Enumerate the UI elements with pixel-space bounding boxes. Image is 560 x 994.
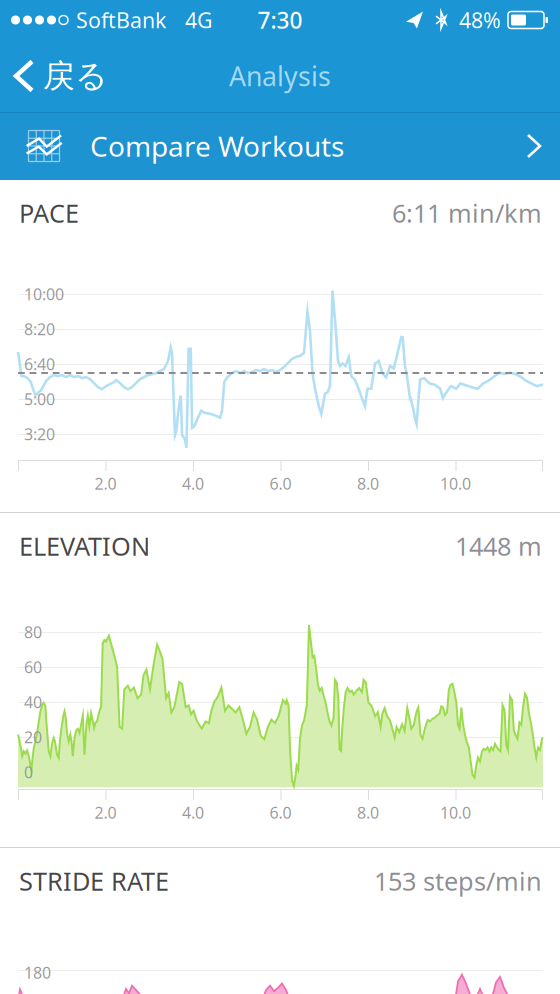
- staticText: 48%: [459, 6, 501, 34]
- staticText: ELEVATION: [19, 529, 150, 563]
- staticText: 8.0: [357, 473, 379, 494]
- staticText: Analysis: [229, 58, 331, 94]
- staticText: 7:30: [257, 5, 302, 35]
- staticText: 4.0: [182, 802, 204, 823]
- staticText: 4.0: [182, 473, 204, 494]
- staticText: 10.0: [440, 802, 471, 823]
- staticText: 10.0: [440, 473, 471, 494]
- staticText: 180: [24, 962, 51, 983]
- staticText: 戻る: [43, 56, 108, 96]
- staticText: 4G: [185, 6, 213, 34]
- staticText: 40: [24, 691, 42, 713]
- button[interactable]: Compare Workouts: [0, 112, 560, 180]
- staticText: 6.0: [269, 473, 291, 494]
- staticText: STRIDE RATE: [19, 864, 169, 898]
- staticText: 0: [24, 761, 33, 783]
- staticText: 5:00: [24, 388, 55, 410]
- staticText: 60: [24, 656, 42, 678]
- staticText: 20: [24, 726, 42, 748]
- staticText: 6.0: [269, 802, 291, 823]
- staticText: 6:11 min/km: [392, 196, 542, 230]
- staticText: 8.0: [357, 802, 379, 823]
- staticText: PACE: [19, 196, 79, 230]
- staticText: Compare Workouts: [90, 127, 344, 165]
- staticText: 6:40: [24, 353, 55, 375]
- staticText: SoftBank: [76, 6, 166, 34]
- staticText: 80: [24, 621, 42, 643]
- staticText: 10:00: [24, 283, 64, 305]
- staticText: 1448 m: [455, 529, 542, 563]
- staticText: 3:20: [24, 423, 55, 445]
- staticText: 8:20: [24, 318, 55, 340]
- staticText: 2.0: [94, 473, 116, 494]
- button[interactable]: 戻る: [0, 40, 120, 112]
- staticText: 153 steps/min: [374, 864, 542, 898]
- staticText: 2.0: [94, 802, 116, 823]
